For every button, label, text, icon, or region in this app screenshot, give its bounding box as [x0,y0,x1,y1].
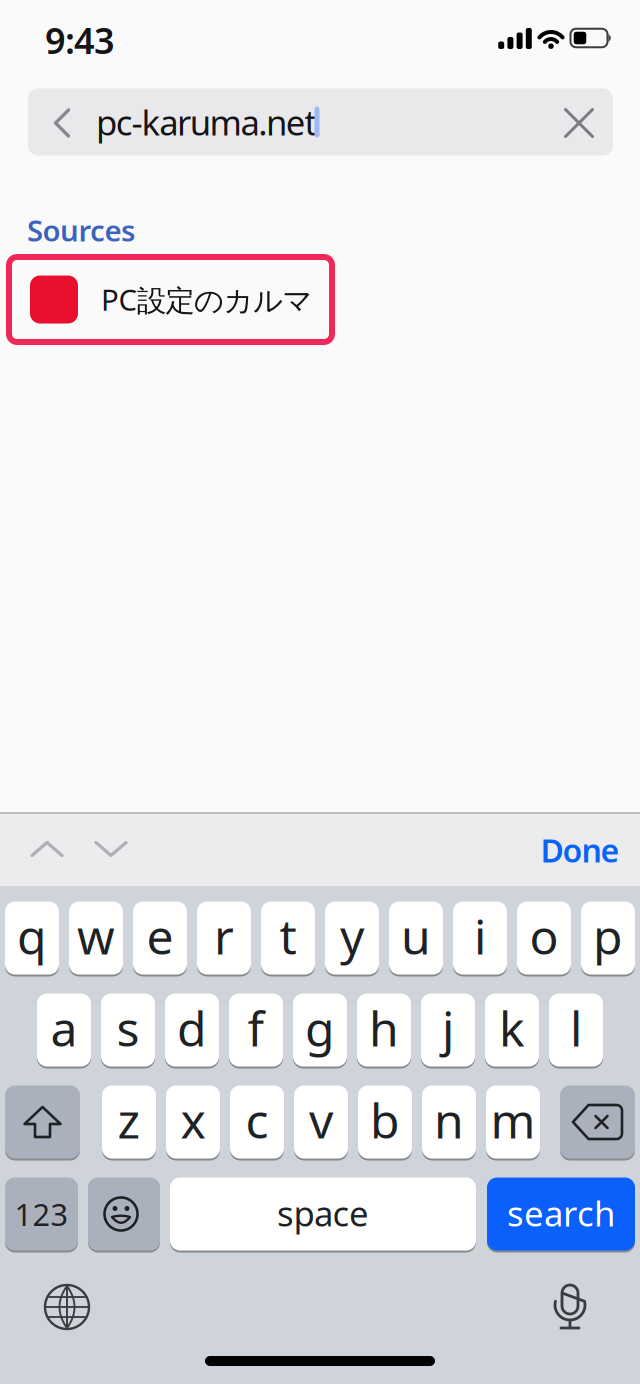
staticText: z [117,1088,140,1152]
staticText: u [401,904,431,968]
staticText: f [247,996,264,1060]
button[interactable]: Clear text [554,98,604,148]
staticText: p [593,904,623,968]
button[interactable]: q [5,900,59,975]
staticText: o [529,904,558,968]
button[interactable]: i [453,900,507,975]
button[interactable]: Emoji [88,1176,160,1251]
button[interactable]: t [261,900,315,975]
staticText: m [490,1088,535,1152]
button[interactable]: Delete [560,1084,635,1159]
button[interactable]: 123 [5,1176,78,1251]
button[interactable]: s [101,992,155,1067]
staticText: a [50,996,77,1060]
button[interactable]: p [581,900,635,975]
button[interactable]: r [197,900,251,975]
staticText: s [116,996,139,1060]
button[interactable]: Next keyboard [37,1277,97,1337]
button[interactable]: g [293,992,347,1067]
staticText: c [245,1088,268,1152]
button[interactable]: c [230,1084,284,1159]
button[interactable]: y [325,900,379,975]
button[interactable]: n [422,1084,476,1159]
staticText: 9:43 [45,16,115,64]
staticText: i [474,904,486,968]
button[interactable]: Previous field [22,824,72,874]
staticText: g [305,996,335,1060]
button[interactable]: space [170,1176,476,1251]
staticText: r [214,904,234,968]
button[interactable]: l [549,992,603,1067]
staticText: PC設定のカルマ [101,280,312,319]
button[interactable]: x [166,1084,220,1159]
staticText: Sources [27,210,135,249]
button[interactable]: m [486,1084,540,1159]
staticText: h [369,996,399,1060]
button[interactable]: search [487,1176,635,1251]
staticText: x [180,1088,205,1152]
button[interactable]: a [37,992,91,1067]
staticText: l [570,996,582,1060]
button[interactable]: j [421,992,475,1067]
staticText: space [277,1190,369,1236]
staticText: search [507,1190,615,1236]
staticText: w [77,904,115,968]
button[interactable]: Shift [5,1084,80,1159]
button[interactable]: f [229,992,283,1067]
button[interactable]: Dictate [540,1279,600,1339]
button[interactable]: Done [525,820,635,880]
button[interactable]: k [485,992,539,1067]
staticText: q [17,904,47,968]
staticText: v [309,1088,333,1152]
staticText: b [370,1088,400,1152]
staticText: j [442,996,454,1060]
staticText: e [146,904,173,968]
button[interactable]: PC設定のカルマ [0,254,640,345]
staticText: k [499,996,525,1060]
button[interactable]: e [133,900,187,975]
button[interactable]: b [358,1084,412,1159]
button[interactable]: u [389,900,443,975]
button[interactable]: v [294,1084,348,1159]
button[interactable]: Back [42,98,82,148]
staticText: y [340,904,364,968]
button[interactable]: w [69,900,123,975]
button[interactable]: Next field [86,824,136,874]
button[interactable]: z [102,1084,156,1159]
staticText: d [177,996,207,1060]
staticText: n [434,1088,464,1152]
button[interactable]: d [165,992,219,1067]
button[interactable]: o [517,900,571,975]
staticText: pc-karuma.net [96,99,318,145]
staticText: 123 [14,1194,68,1234]
staticText: Done [540,829,619,871]
button[interactable]: h [357,992,411,1067]
staticText: t [279,904,296,968]
